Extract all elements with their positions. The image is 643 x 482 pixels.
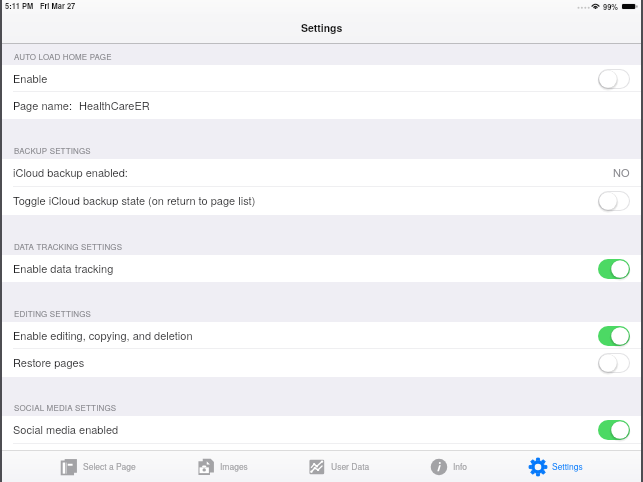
staticText: Restore pages (13, 354, 85, 370)
staticText: User Data (331, 460, 370, 472)
button[interactable]: Images (197, 451, 248, 482)
staticText: EDITING SETTINGS (14, 308, 92, 319)
button[interactable]: iCloud backup enabled: (0, 159, 643, 187)
staticText: Images (220, 460, 248, 472)
button[interactable]: Toggle iCloud backup state (on return to… (0, 187, 643, 215)
button[interactable]: Switch on (598, 326, 630, 346)
button[interactable]: Enable data tracking (0, 255, 643, 282)
button[interactable]: Enable editing, copying, and deletion (0, 322, 643, 349)
staticText: Page name: (13, 97, 72, 113)
staticText: Toggle iCloud backup state (on return to… (13, 192, 256, 208)
button[interactable]: Social media enabled (0, 416, 643, 444)
button[interactable]: Switch on (598, 259, 630, 279)
button[interactable]: Restore pages (0, 349, 643, 377)
staticText: HealthCareER (79, 97, 150, 113)
staticText: 5:11 PM (5, 1, 34, 12)
button[interactable]: Enable (0, 65, 643, 92)
staticText: 99% (603, 2, 619, 13)
staticText: Fri Mar 27 (40, 1, 76, 12)
staticText: SOCIAL MEDIA SETTINGS (14, 402, 117, 413)
button[interactable]: Switch off (598, 69, 630, 89)
staticText: Enable (13, 70, 48, 86)
staticText: Enable data tracking (13, 260, 114, 276)
staticText: DATA TRACKING SETTINGS (14, 241, 123, 252)
staticText: Social media enabled (13, 421, 119, 437)
staticText: BACKUP SETTINGS (14, 145, 91, 156)
staticText: NO (613, 164, 630, 180)
button[interactable]: User Data (308, 451, 370, 482)
button[interactable]: Switch off (598, 353, 630, 373)
button[interactable]: Page name: (0, 92, 643, 119)
staticText: iCloud backup enabled: (13, 164, 128, 180)
staticText: Enable editing, copying, and deletion (13, 327, 193, 343)
staticText: AUTO LOAD HOME PAGE (14, 51, 112, 62)
button[interactable]: Info (430, 451, 468, 482)
button[interactable]: Switch off (598, 191, 630, 211)
staticText: Select a Page (83, 460, 136, 472)
staticText: Settings (552, 460, 583, 472)
staticText: Info (453, 460, 468, 472)
button[interactable]: Select a Page (60, 451, 136, 482)
button[interactable]: Settings (529, 451, 583, 482)
staticText: Settings (301, 20, 343, 35)
button[interactable]: Switch on (598, 420, 630, 440)
